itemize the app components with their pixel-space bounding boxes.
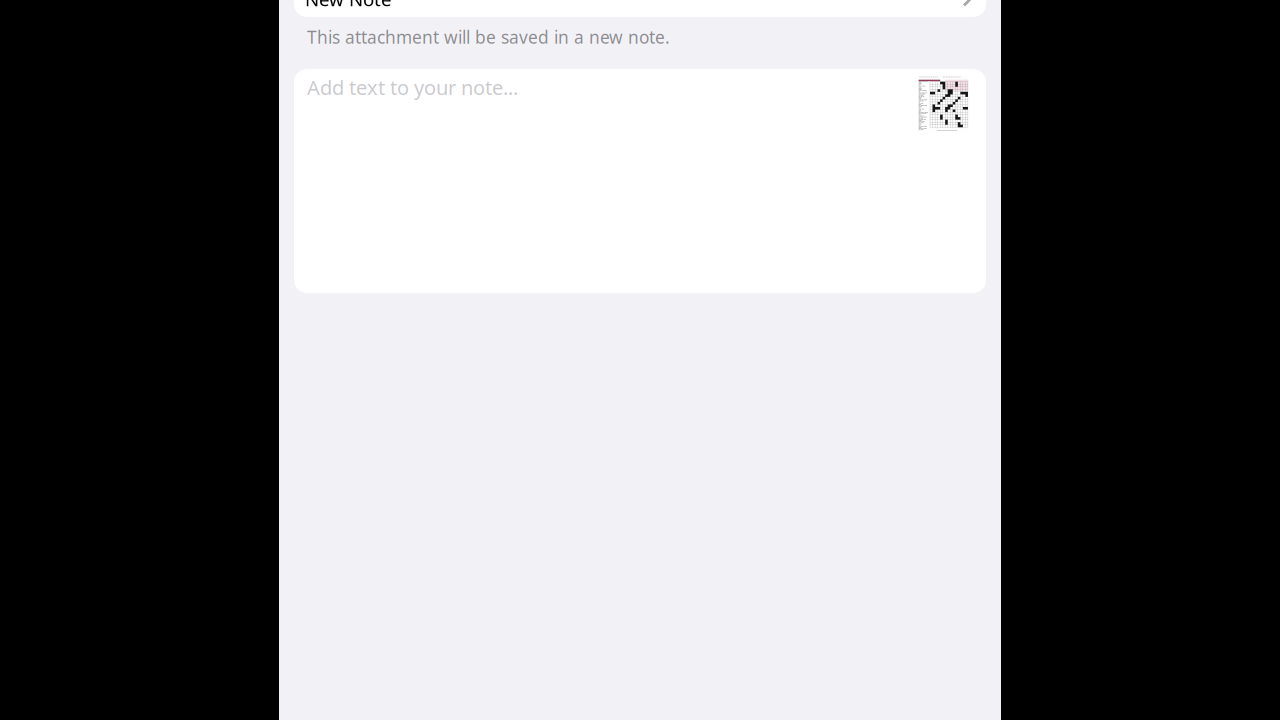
button[interactable]: New Note xyxy=(279,0,1001,17)
staticText: New Note xyxy=(305,0,392,11)
staticText: Add text to your note... xyxy=(307,74,518,101)
staticText: This attachment will be saved in a new n… xyxy=(307,25,670,48)
button[interactable]: Add text to your note... xyxy=(279,69,1001,293)
